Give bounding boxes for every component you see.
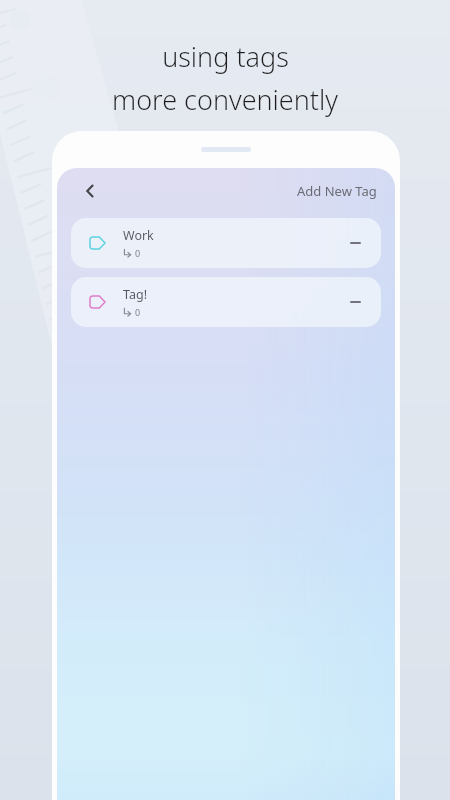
button[interactable]: Work	[71, 218, 381, 268]
button[interactable]: Tag!	[71, 277, 381, 327]
staticText: Add New Tag	[297, 182, 377, 200]
button[interactable]: Add New Tag	[289, 177, 385, 205]
staticText: 0	[135, 247, 141, 259]
button[interactable]: Back	[75, 176, 105, 206]
staticText: Tag!	[123, 286, 148, 303]
staticText: Work	[123, 227, 154, 244]
staticText: more conveniently	[112, 81, 338, 118]
staticText: using tags	[162, 38, 289, 75]
button[interactable]: Remove tag	[341, 229, 369, 257]
staticText: 0	[135, 306, 141, 318]
button[interactable]: Remove tag	[341, 288, 369, 316]
